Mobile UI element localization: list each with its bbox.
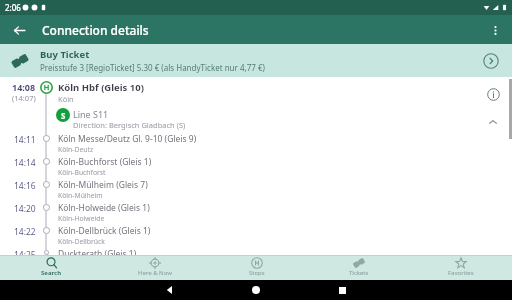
button[interactable]: 14:16 <box>0 177 512 200</box>
staticText: Connection details <box>42 22 149 38</box>
button[interactable]: Home <box>244 280 268 300</box>
staticText: Direction: Bergisch Gladbach (S) <box>73 120 186 130</box>
button[interactable]: Open ticket <box>480 50 502 72</box>
staticText: 14:20 <box>14 203 36 215</box>
staticText: Favorites <box>448 269 474 277</box>
staticText: Köln Hbf (Gleis 10) <box>58 81 144 94</box>
staticText: Tickets <box>349 269 369 277</box>
button[interactable]: Back <box>6 17 32 43</box>
button[interactable]: Favorites <box>410 256 512 280</box>
staticText: Köln <box>58 94 74 104</box>
staticText: Köln-Mülheim <box>58 191 103 200</box>
button[interactable]: Tickets <box>308 256 410 280</box>
staticText: Buy Ticket <box>40 48 90 61</box>
button[interactable]: Recents <box>330 280 354 300</box>
staticText: Here & Now <box>138 269 172 277</box>
staticText: Köln Messe/Deutz Gl. 9-10 (Gleis 9) <box>58 133 197 145</box>
button[interactable]: 14:14 <box>0 154 512 177</box>
staticText: (14:07) <box>12 93 36 103</box>
staticText: 14:25 <box>14 249 36 255</box>
staticText: Köln-Dellbrück <box>58 237 105 246</box>
button[interactable]: More options <box>482 17 508 43</box>
staticText: 14:16 <box>14 180 36 192</box>
staticText: 14:11 <box>14 134 36 146</box>
staticText: 2:06 <box>5 2 21 13</box>
button[interactable]: 14:20 <box>0 200 512 223</box>
staticText: 14:08 <box>12 81 36 93</box>
staticText: Köln-Mülheim (Gleis 7) <box>58 179 148 191</box>
button[interactable]: Buy Ticket <box>0 44 512 77</box>
staticText: Köln-Buchforst (Gleis 1) <box>58 156 152 168</box>
staticText: Search <box>41 269 62 277</box>
button[interactable]: Collapse <box>480 109 506 135</box>
staticText: 14:22 <box>14 226 36 238</box>
staticText: Köln-Dellbrück (Gleis 1) <box>58 225 151 237</box>
button[interactable]: Stops <box>206 256 308 280</box>
button[interactable]: S <box>0 105 512 131</box>
staticText: Köln-Deutz <box>58 145 94 154</box>
staticText: Duckterath (Gleis 1) <box>58 248 137 255</box>
staticText: Köln-Holweide (Gleis 1) <box>58 202 150 214</box>
button[interactable]: 14:11 <box>0 131 512 154</box>
button[interactable]: Search <box>0 256 103 280</box>
staticText: Line S11 <box>73 108 109 120</box>
button[interactable]: 14:08 <box>0 77 512 105</box>
button[interactable]: 14:22 <box>0 223 512 246</box>
staticText: Preisstufe 3 [RegioTicket] 5.30 € (als H… <box>40 62 265 73</box>
staticText: S <box>61 110 66 121</box>
button[interactable]: Info <box>480 81 506 107</box>
staticText: Stops <box>249 269 265 277</box>
button[interactable]: Here & Now <box>103 256 206 280</box>
staticText: Köln-Holweide <box>58 214 105 223</box>
staticText: Köln-Buchforst <box>58 168 106 177</box>
button[interactable]: 14:25 <box>0 246 512 255</box>
button[interactable]: Back <box>158 280 182 300</box>
staticText: 14:14 <box>14 157 36 169</box>
